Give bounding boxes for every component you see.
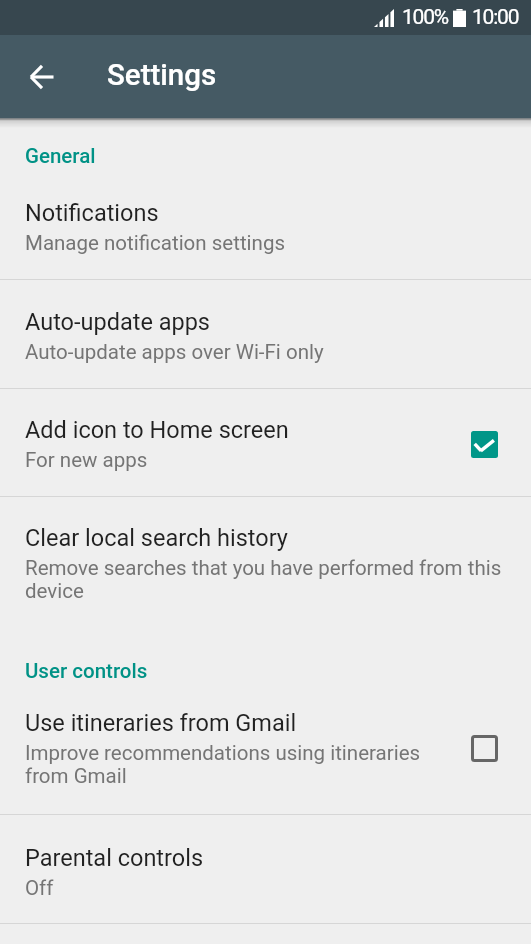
button[interactable]: Use itineraries from Gmail	[0, 697, 531, 814]
staticText: Settings	[107, 58, 217, 93]
staticText: Remove searches that you have performed …	[25, 556, 509, 603]
button[interactable]: Add icon to Home screen	[0, 389, 531, 496]
staticText: Improve recommendations using itinerarie…	[25, 741, 461, 788]
button[interactable]: Auto-update apps	[0, 280, 531, 388]
staticText: Manage notification settings	[25, 231, 285, 255]
button[interactable]: Back	[18, 53, 65, 100]
staticText: Parental controls	[25, 844, 204, 872]
button[interactable]: Parental controls	[0, 815, 531, 923]
button[interactable]: Clear local search history	[0, 497, 531, 629]
staticText: Use itineraries from Gmail	[25, 709, 297, 737]
button[interactable]: Add icon to Home screen, checked	[471, 431, 498, 458]
staticText: Add icon to Home screen	[25, 416, 289, 444]
staticText: 10:00	[472, 5, 519, 30]
staticText: User controls	[25, 659, 148, 683]
staticText: Auto-update apps	[25, 308, 210, 336]
staticText: Notifications	[25, 199, 159, 227]
button[interactable]: Use itineraries from Gmail, unchecked	[471, 735, 498, 762]
staticText: Clear local search history	[25, 524, 288, 552]
staticText: Auto-update apps over Wi-Fi only	[25, 340, 324, 364]
staticText: General	[25, 144, 96, 168]
staticText: For new apps	[25, 448, 148, 472]
staticText: 100%	[402, 5, 448, 30]
staticText: Off	[25, 876, 54, 900]
button[interactable]: Notifications	[0, 182, 531, 279]
